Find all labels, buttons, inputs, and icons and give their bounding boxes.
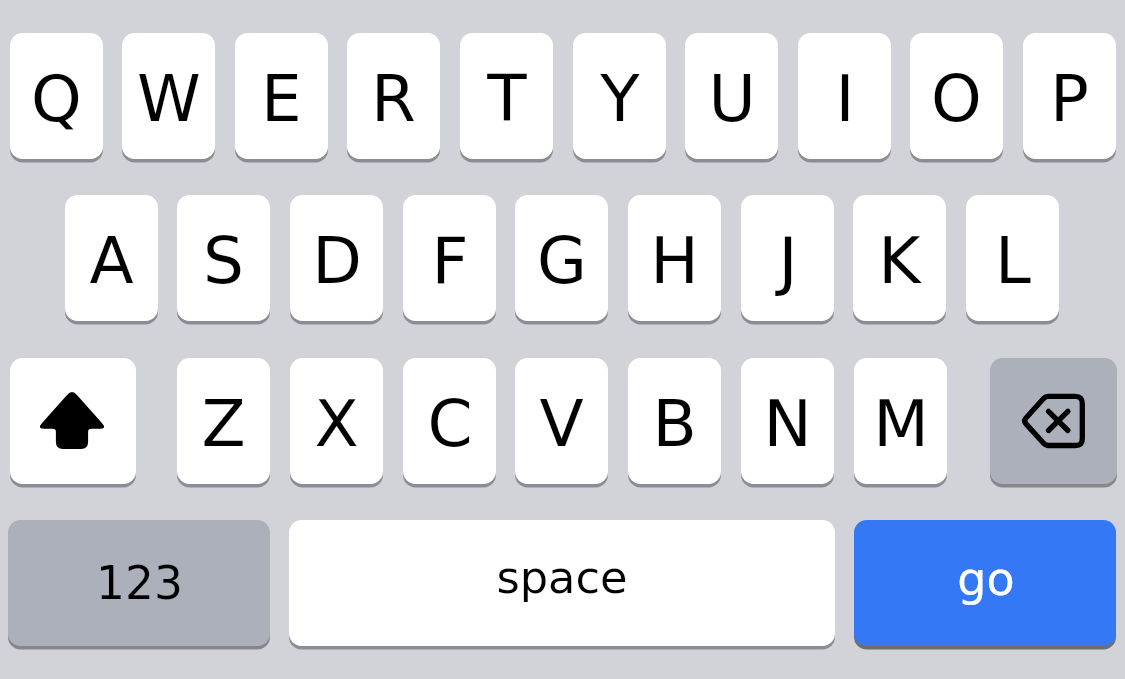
staticText: B xyxy=(652,386,697,461)
button[interactable]: R xyxy=(347,33,440,159)
button[interactable]: K xyxy=(853,195,946,321)
staticText: V xyxy=(539,386,584,461)
button[interactable]: U xyxy=(685,33,778,159)
staticText: I xyxy=(835,61,855,136)
staticText: U xyxy=(708,61,756,136)
button[interactable]: I xyxy=(798,33,891,159)
staticText: C xyxy=(427,386,473,461)
button[interactable]: N xyxy=(741,358,834,484)
button[interactable]: Q xyxy=(10,33,103,159)
button[interactable]: S xyxy=(177,195,270,321)
staticText: Q xyxy=(31,61,82,136)
staticText: R xyxy=(371,61,416,136)
button[interactable]: H xyxy=(628,195,721,321)
button[interactable]: space xyxy=(289,520,835,646)
button[interactable]: Backspace xyxy=(990,358,1117,484)
staticText: G xyxy=(537,223,587,298)
button[interactable]: J xyxy=(741,195,834,321)
button[interactable]: P xyxy=(1023,33,1116,159)
button[interactable]: 123 xyxy=(8,520,270,646)
staticText: P xyxy=(1050,61,1089,136)
staticText: E xyxy=(261,61,302,136)
staticText: Y xyxy=(600,61,640,136)
button[interactable]: D xyxy=(290,195,383,321)
button[interactable]: Y xyxy=(573,33,666,159)
staticText: M xyxy=(873,386,929,461)
button[interactable]: A xyxy=(65,195,158,321)
staticText: K xyxy=(878,223,921,298)
staticText: N xyxy=(763,386,812,461)
staticText: Z xyxy=(201,386,246,461)
button[interactable]: M xyxy=(854,358,947,484)
staticText: D xyxy=(312,223,362,298)
staticText: space xyxy=(496,552,628,604)
button[interactable]: Z xyxy=(177,358,270,484)
staticText: X xyxy=(314,386,359,461)
button[interactable]: T xyxy=(460,33,553,159)
staticText: T xyxy=(487,61,527,136)
button[interactable]: X xyxy=(290,358,383,484)
button[interactable]: go xyxy=(854,520,1116,646)
button[interactable]: W xyxy=(122,33,215,159)
staticText: A xyxy=(89,223,134,298)
staticText: F xyxy=(431,223,469,298)
staticText: J xyxy=(778,223,798,298)
button[interactable]: G xyxy=(515,195,608,321)
staticText: L xyxy=(995,223,1031,298)
staticText: go xyxy=(957,552,1015,606)
button[interactable]: C xyxy=(403,358,496,484)
button[interactable]: E xyxy=(235,33,328,159)
button[interactable]: F xyxy=(403,195,496,321)
button[interactable]: B xyxy=(628,358,721,484)
staticText: H xyxy=(650,223,699,298)
button[interactable]: O xyxy=(910,33,1003,159)
staticText: 123 xyxy=(96,557,183,610)
button[interactable]: V xyxy=(515,358,608,484)
button[interactable]: Shift xyxy=(10,358,136,484)
staticText: O xyxy=(931,61,982,136)
staticText: S xyxy=(203,223,244,298)
button[interactable]: L xyxy=(966,195,1059,321)
staticText: W xyxy=(137,61,201,136)
